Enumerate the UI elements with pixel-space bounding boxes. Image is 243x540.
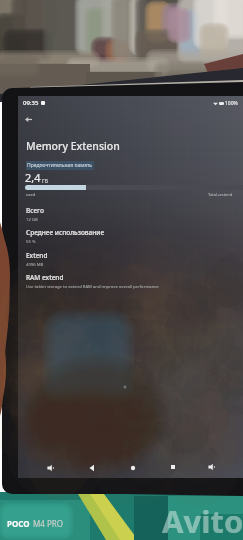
button[interactable]: Back (21, 112, 35, 126)
button[interactable]: Back (85, 461, 99, 475)
staticText: 12 GB (26, 217, 38, 223)
staticText: 100% (225, 100, 238, 107)
staticText: Use tablet storage to extend RAM and imp… (26, 284, 159, 290)
button[interactable]: Volume down (44, 461, 58, 475)
staticText: RAM extend (26, 273, 64, 282)
staticText: Всего (26, 206, 44, 215)
staticText: 4096 MB (26, 262, 44, 268)
button[interactable]: Volume up (205, 460, 219, 474)
staticText: Предпочтительная память (27, 162, 93, 169)
button[interactable]: Всего (18, 206, 243, 223)
staticText: Memory Extension (26, 139, 120, 153)
staticText: POCO (7, 518, 30, 529)
staticText: Среднее использование (26, 228, 105, 237)
staticText: 2,4 (25, 170, 41, 185)
button[interactable]: Extend (18, 251, 243, 268)
staticText: 55 % (26, 239, 36, 245)
staticText: ГБ (42, 177, 49, 184)
staticText: 09:35 (23, 99, 39, 107)
button[interactable]: Recents (166, 460, 180, 474)
staticText: Total+extend (208, 192, 233, 197)
staticText: Extend (26, 251, 48, 260)
staticText: used (26, 192, 36, 197)
button[interactable]: Home (126, 461, 140, 475)
staticText: M4 PRO (33, 518, 63, 529)
staticText: Avito (162, 500, 243, 540)
button[interactable]: Среднее использование (18, 228, 243, 245)
button[interactable]: RAM extend (18, 273, 243, 290)
